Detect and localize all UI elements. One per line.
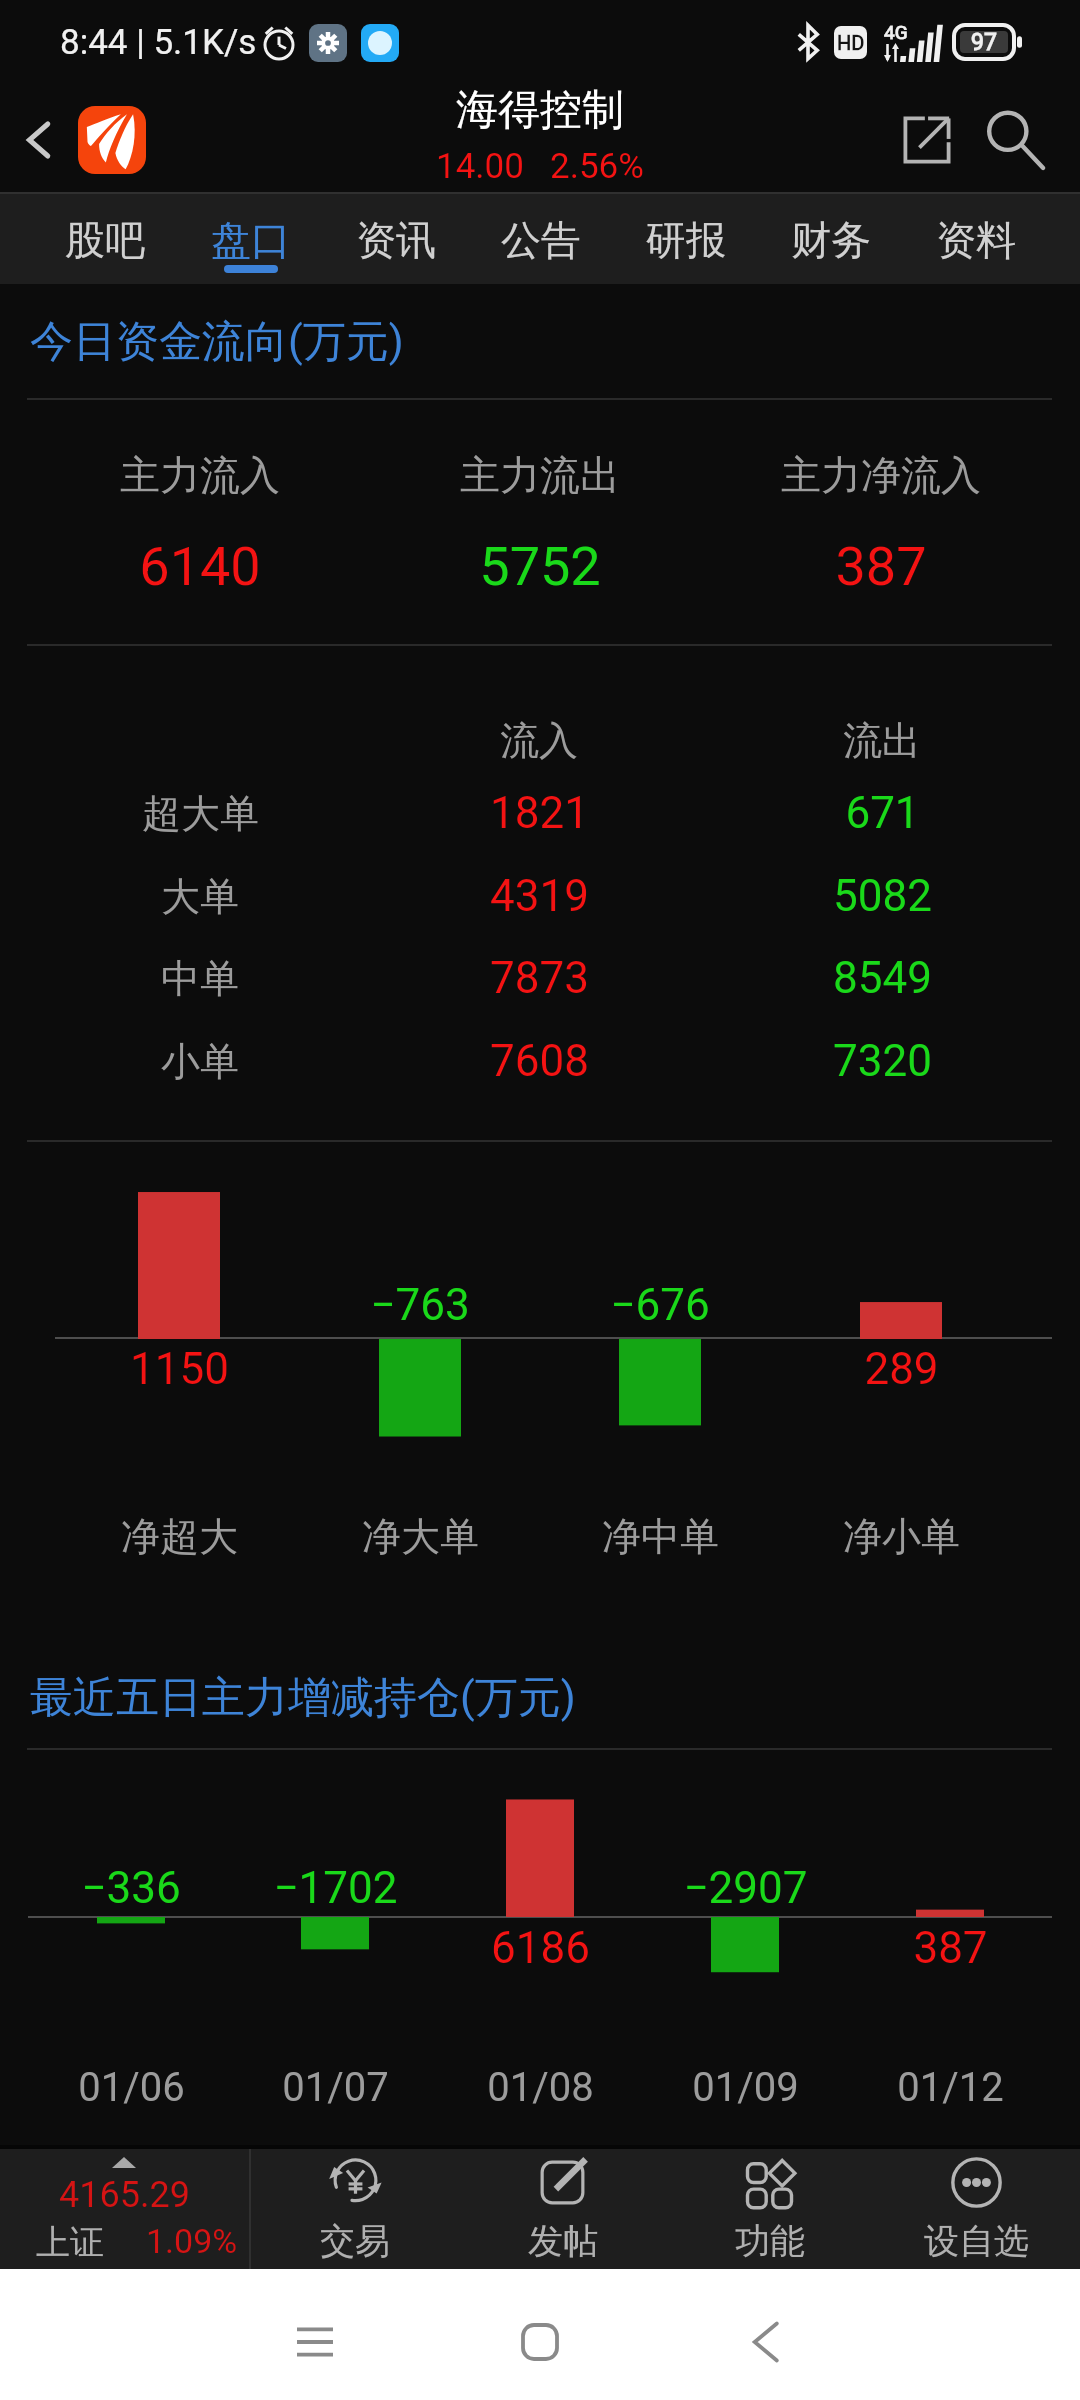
staticText: 7873 (490, 952, 589, 1004)
button[interactable]: Recents (275, 2302, 355, 2382)
staticText: 大单 (161, 872, 239, 921)
staticText: 387 (913, 1922, 988, 1974)
staticText: 最近五日主力增减持仓(万元) (30, 1671, 576, 1725)
staticText: 净大单 (362, 1512, 479, 1561)
staticText: 海得控制 (456, 84, 624, 137)
staticText: 流入 (500, 716, 578, 765)
staticText: 8:44 | 5.1K/s (60, 22, 257, 63)
staticText: 4319 (490, 870, 589, 922)
button[interactable]: Search (969, 95, 1059, 185)
staticText: 研报 (646, 215, 726, 265)
staticText: 交易 (320, 2219, 390, 2263)
button[interactable]: 4165.29 (0, 2145, 249, 2269)
staticText: 今日资金流向(万元) (30, 315, 404, 369)
button[interactable]: 设自选 (873, 2145, 1080, 2269)
button[interactable]: 公告 (468, 192, 613, 284)
staticText: 净超大 (121, 1512, 238, 1561)
button[interactable]: 研报 (613, 192, 758, 284)
staticText: −2907 (683, 1862, 808, 1914)
button[interactable]: Back (725, 2302, 805, 2382)
staticText: 主力流入 (120, 450, 280, 500)
staticText: 流出 (843, 716, 921, 765)
staticText: 2.56% (550, 146, 644, 187)
staticText: 盘口 (211, 215, 291, 265)
staticText: 功能 (735, 2219, 805, 2263)
staticText: −336 (81, 1862, 181, 1914)
staticText: 6140 (139, 535, 261, 598)
staticText: 上证 (36, 2221, 104, 2264)
staticText: 7608 (490, 1035, 589, 1087)
button[interactable]: Home (500, 2302, 580, 2382)
staticText: 671 (845, 787, 920, 839)
staticText: 主力净流入 (781, 450, 981, 500)
staticText: 01/08 (487, 2064, 594, 2111)
button[interactable]: App home (78, 106, 146, 174)
staticText: 4165.29 (59, 2174, 190, 2216)
staticText: 5082 (833, 870, 932, 922)
staticText: 超大单 (142, 789, 259, 838)
staticText: 7320 (833, 1035, 932, 1087)
button[interactable]: 交易 (251, 2145, 459, 2269)
staticText: 01/12 (897, 2064, 1004, 2111)
staticText: 5752 (479, 535, 601, 598)
staticText: 净中单 (602, 1512, 719, 1561)
button[interactable]: Share (885, 98, 969, 182)
staticText: 1821 (490, 787, 589, 839)
staticText: 股吧 (65, 215, 145, 265)
staticText: −763 (370, 1279, 470, 1331)
staticText: 8549 (833, 952, 932, 1004)
staticText: 中单 (161, 954, 239, 1003)
staticText: 97 (971, 29, 997, 56)
staticText: 6186 (491, 1922, 590, 1974)
staticText: 1.09% (146, 2221, 238, 2261)
button[interactable]: 财务 (758, 192, 903, 284)
staticText: 01/07 (282, 2064, 389, 2111)
staticText: 资料 (936, 215, 1016, 265)
staticText: 净小单 (843, 1512, 960, 1561)
staticText: 资讯 (356, 215, 436, 265)
staticText: 01/09 (692, 2064, 799, 2111)
staticText: 公告 (501, 215, 581, 265)
staticText: 财务 (791, 215, 871, 265)
button[interactable]: Back (0, 101, 78, 179)
staticText: 1150 (130, 1343, 229, 1395)
staticText: 289 (864, 1343, 939, 1395)
staticText: 发帖 (528, 2219, 598, 2263)
staticText: 主力流出 (460, 450, 620, 500)
staticText: −676 (610, 1279, 710, 1331)
staticText: 设自选 (924, 2219, 1029, 2263)
button[interactable]: 资料 (903, 192, 1048, 284)
staticText: 4G (884, 21, 908, 43)
button[interactable]: 功能 (666, 2145, 873, 2269)
button[interactable]: 股吧 (32, 192, 178, 284)
staticText: −1702 (273, 1862, 398, 1914)
staticText: 387 (835, 535, 927, 598)
button[interactable]: 盘口 (178, 192, 323, 284)
button[interactable]: 发帖 (459, 2145, 666, 2269)
button[interactable]: 资讯 (323, 192, 468, 284)
staticText: HD (837, 31, 865, 54)
staticText: 小单 (161, 1037, 239, 1086)
staticText: 14.00 (436, 146, 524, 187)
staticText: 01/06 (78, 2064, 185, 2111)
